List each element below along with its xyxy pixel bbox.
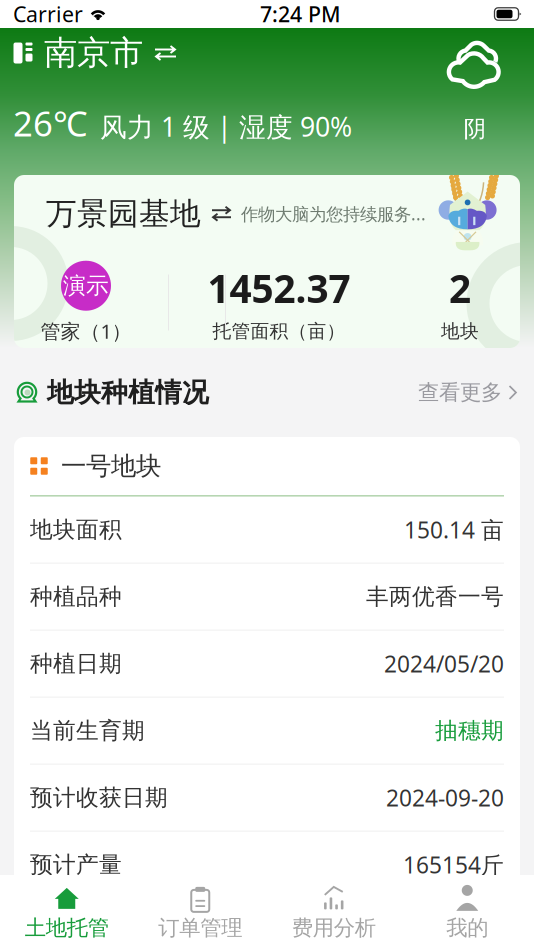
staticText: 管家（1） — [40, 318, 131, 344]
staticText: 当前长势 — [30, 918, 122, 945]
staticText: 托管面积（亩） — [212, 320, 345, 343]
staticText: 当前生育期 — [30, 717, 145, 744]
button[interactable]: 南京市 — [13, 40, 177, 66]
staticText: 地块面积 — [30, 516, 122, 543]
staticText: 费用分析 — [292, 915, 376, 941]
staticText: 丰两优香一号 — [366, 583, 504, 610]
button[interactable]: 一号地块 — [14, 437, 520, 495]
staticText: 土地托管 — [25, 915, 109, 941]
staticText: 地块 — [441, 320, 479, 343]
staticText: 165154斤 — [403, 849, 504, 880]
staticText: 演示 — [63, 272, 109, 300]
staticText: 作物大脑为您持续服务... — [241, 202, 426, 225]
staticText: 150.14 亩 — [404, 514, 504, 545]
button[interactable]: 当前长势 — [14, 899, 520, 950]
staticText: 一号地块 — [61, 450, 161, 481]
staticText: 万景园基地 — [46, 195, 201, 233]
button[interactable]: 地块面积 — [14, 497, 520, 563]
staticText: 地块种植情况 — [47, 376, 209, 409]
staticText: 阴 — [463, 115, 486, 143]
staticText: 2024/05/20 — [384, 648, 504, 679]
staticText: 良好 — [458, 918, 504, 945]
button[interactable]: 种植日期 — [14, 631, 520, 697]
button[interactable]: 预计产量 — [14, 832, 520, 898]
button[interactable]: 费用分析 — [267, 876, 400, 949]
button[interactable]: 当前生育期 — [14, 698, 520, 764]
button[interactable]: 订单管理 — [133, 876, 267, 949]
staticText: 风力 1 级 | 湿度 90% — [100, 109, 352, 144]
button[interactable]: 我的 — [400, 876, 534, 949]
staticText: 抽穗期 — [435, 717, 504, 744]
staticText: 查看更多 — [418, 379, 502, 406]
staticText: 2024-09-20 — [386, 782, 504, 813]
staticText: 预计收获日期 — [30, 784, 168, 811]
staticText: 26℃ — [13, 100, 87, 146]
button[interactable]: 预计收获日期 — [14, 765, 520, 831]
staticText: 种植品种 — [30, 583, 122, 610]
button[interactable]: 土地托管 — [0, 876, 133, 949]
staticText: 订单管理 — [158, 915, 242, 941]
staticText: 南京市 — [44, 32, 143, 73]
staticText: 种植日期 — [30, 650, 122, 677]
staticText: Carrier — [13, 0, 83, 28]
button[interactable]: 种植品种 — [14, 564, 520, 630]
staticText: 我的 — [446, 915, 488, 941]
button[interactable]: 查看更多 — [418, 379, 518, 406]
staticText: 2 — [449, 262, 471, 314]
staticText: 预计产量 — [30, 851, 122, 878]
staticText: 7:24 PM — [260, 0, 341, 28]
staticText: 1452.37 — [207, 262, 350, 314]
